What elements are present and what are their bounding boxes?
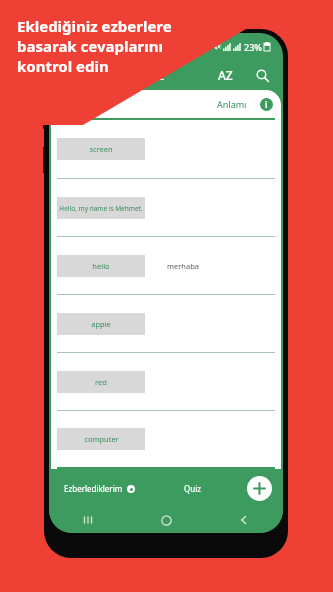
staticText: Quiz [184, 483, 202, 494]
button[interactable]: apple [51, 295, 281, 353]
staticText: Eklediğiniz ezberlere [17, 16, 172, 36]
button[interactable]: Back [58, 64, 80, 86]
button[interactable]: Quiz [180, 479, 206, 498]
staticText: İngilizce [122, 68, 165, 83]
button[interactable]: Search [250, 63, 274, 87]
staticText: AZ [218, 67, 233, 83]
button[interactable]: hello [51, 237, 281, 295]
button[interactable]: Add new word [247, 476, 272, 501]
staticText: screen [89, 144, 113, 154]
staticText: apple [91, 319, 111, 329]
button[interactable]: screen [51, 120, 281, 179]
staticText: merhaba [167, 261, 200, 271]
staticText: hello [92, 261, 110, 271]
staticText: i [265, 99, 268, 110]
button[interactable]: Back [205, 507, 283, 533]
staticText: computer [84, 434, 119, 444]
button[interactable]: Recent apps [49, 507, 127, 533]
staticText: red [95, 377, 107, 387]
staticText: Hello, my name is Mehmet. [59, 204, 143, 213]
staticText: Anlamı [217, 98, 247, 110]
staticText: 23% [244, 41, 262, 53]
staticText: Ezberlediklerim [64, 483, 123, 494]
button[interactable]: Ezberlediklerim [60, 479, 139, 498]
button[interactable]: Hello, my name is Mehmet. [51, 179, 281, 237]
button[interactable]: Sort alphabetically [213, 63, 237, 87]
button[interactable]: Home [127, 507, 205, 533]
button[interactable]: Information [260, 98, 273, 111]
staticText: Ezber [91, 98, 115, 110]
button[interactable]: red [51, 353, 281, 411]
staticText: kontrol edin [17, 56, 109, 76]
button[interactable]: computer [51, 411, 281, 469]
staticText: basarak cevaplarını [17, 36, 163, 56]
